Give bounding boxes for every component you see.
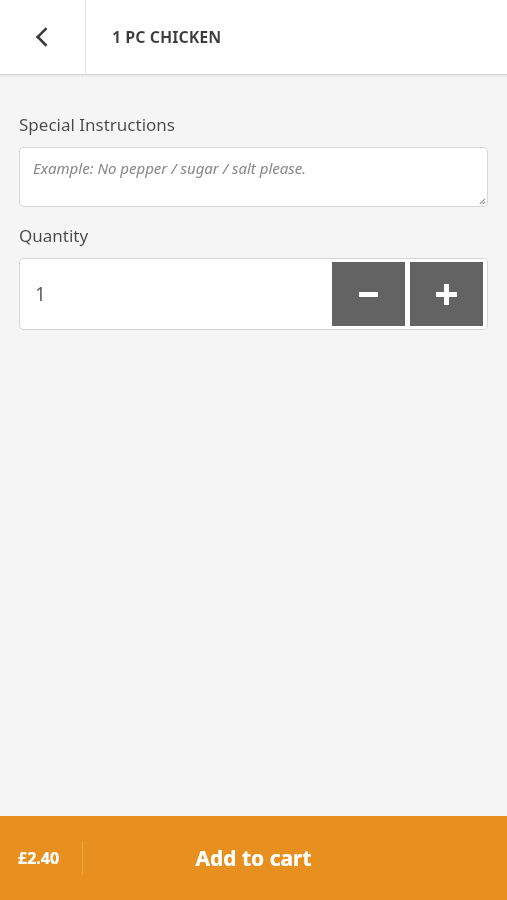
button[interactable]: £2.40 bbox=[0, 816, 507, 900]
button[interactable]: Example: No pepper / sugar / salt please… bbox=[19, 147, 488, 207]
staticText: Example: No pepper / sugar / salt please… bbox=[33, 158, 307, 178]
button[interactable]: Increase quantity bbox=[410, 262, 483, 326]
staticText: 1 PC CHICKEN bbox=[112, 26, 222, 48]
staticText: £2.40 bbox=[18, 847, 60, 869]
button[interactable]: Back bbox=[0, 0, 85, 74]
staticText: Special Instructions bbox=[19, 113, 175, 136]
staticText: Add to cart bbox=[195, 844, 312, 873]
button[interactable]: Decrease quantity bbox=[332, 262, 405, 326]
staticText: 1 bbox=[35, 281, 46, 307]
staticText: Quantity bbox=[19, 224, 89, 247]
